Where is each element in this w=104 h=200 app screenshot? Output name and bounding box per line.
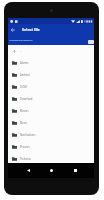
staticText: Music <box>20 121 28 125</box>
staticText: Pictures <box>20 145 30 149</box>
button[interactable]: Download <box>8 93 94 105</box>
button[interactable]: Movies <box>8 105 94 117</box>
button[interactable]: DCIM <box>8 81 94 93</box>
staticText: Notifications <box>20 133 36 137</box>
button[interactable]: Recent apps <box>71 166 80 175</box>
staticText: /storage/emulated/0 <box>9 38 33 41</box>
button[interactable]: Back <box>24 166 33 175</box>
staticText: .. <box>20 49 22 53</box>
button[interactable]: /storage/emulated/0 <box>8 35 94 45</box>
button[interactable]: Home <box>47 166 56 175</box>
staticText: Alarms <box>20 61 29 65</box>
button[interactable]: Storage <box>88 40 94 44</box>
staticText: Podcasts <box>20 157 31 161</box>
button[interactable]: Android <box>8 69 94 81</box>
button[interactable]: .. <box>8 45 94 57</box>
staticText: DCIM <box>20 85 27 89</box>
button[interactable]: Navigate up <box>8 24 17 35</box>
staticText: Select file <box>22 27 40 32</box>
button[interactable]: Pictures <box>8 141 94 153</box>
button[interactable]: Podcasts <box>8 153 94 165</box>
staticText: Movies <box>20 109 29 113</box>
button[interactable]: Alarms <box>8 57 94 69</box>
staticText: Android <box>20 73 30 77</box>
button[interactable]: Notifications <box>8 129 94 141</box>
staticText: Download <box>20 97 33 101</box>
button[interactable]: Music <box>8 117 94 129</box>
